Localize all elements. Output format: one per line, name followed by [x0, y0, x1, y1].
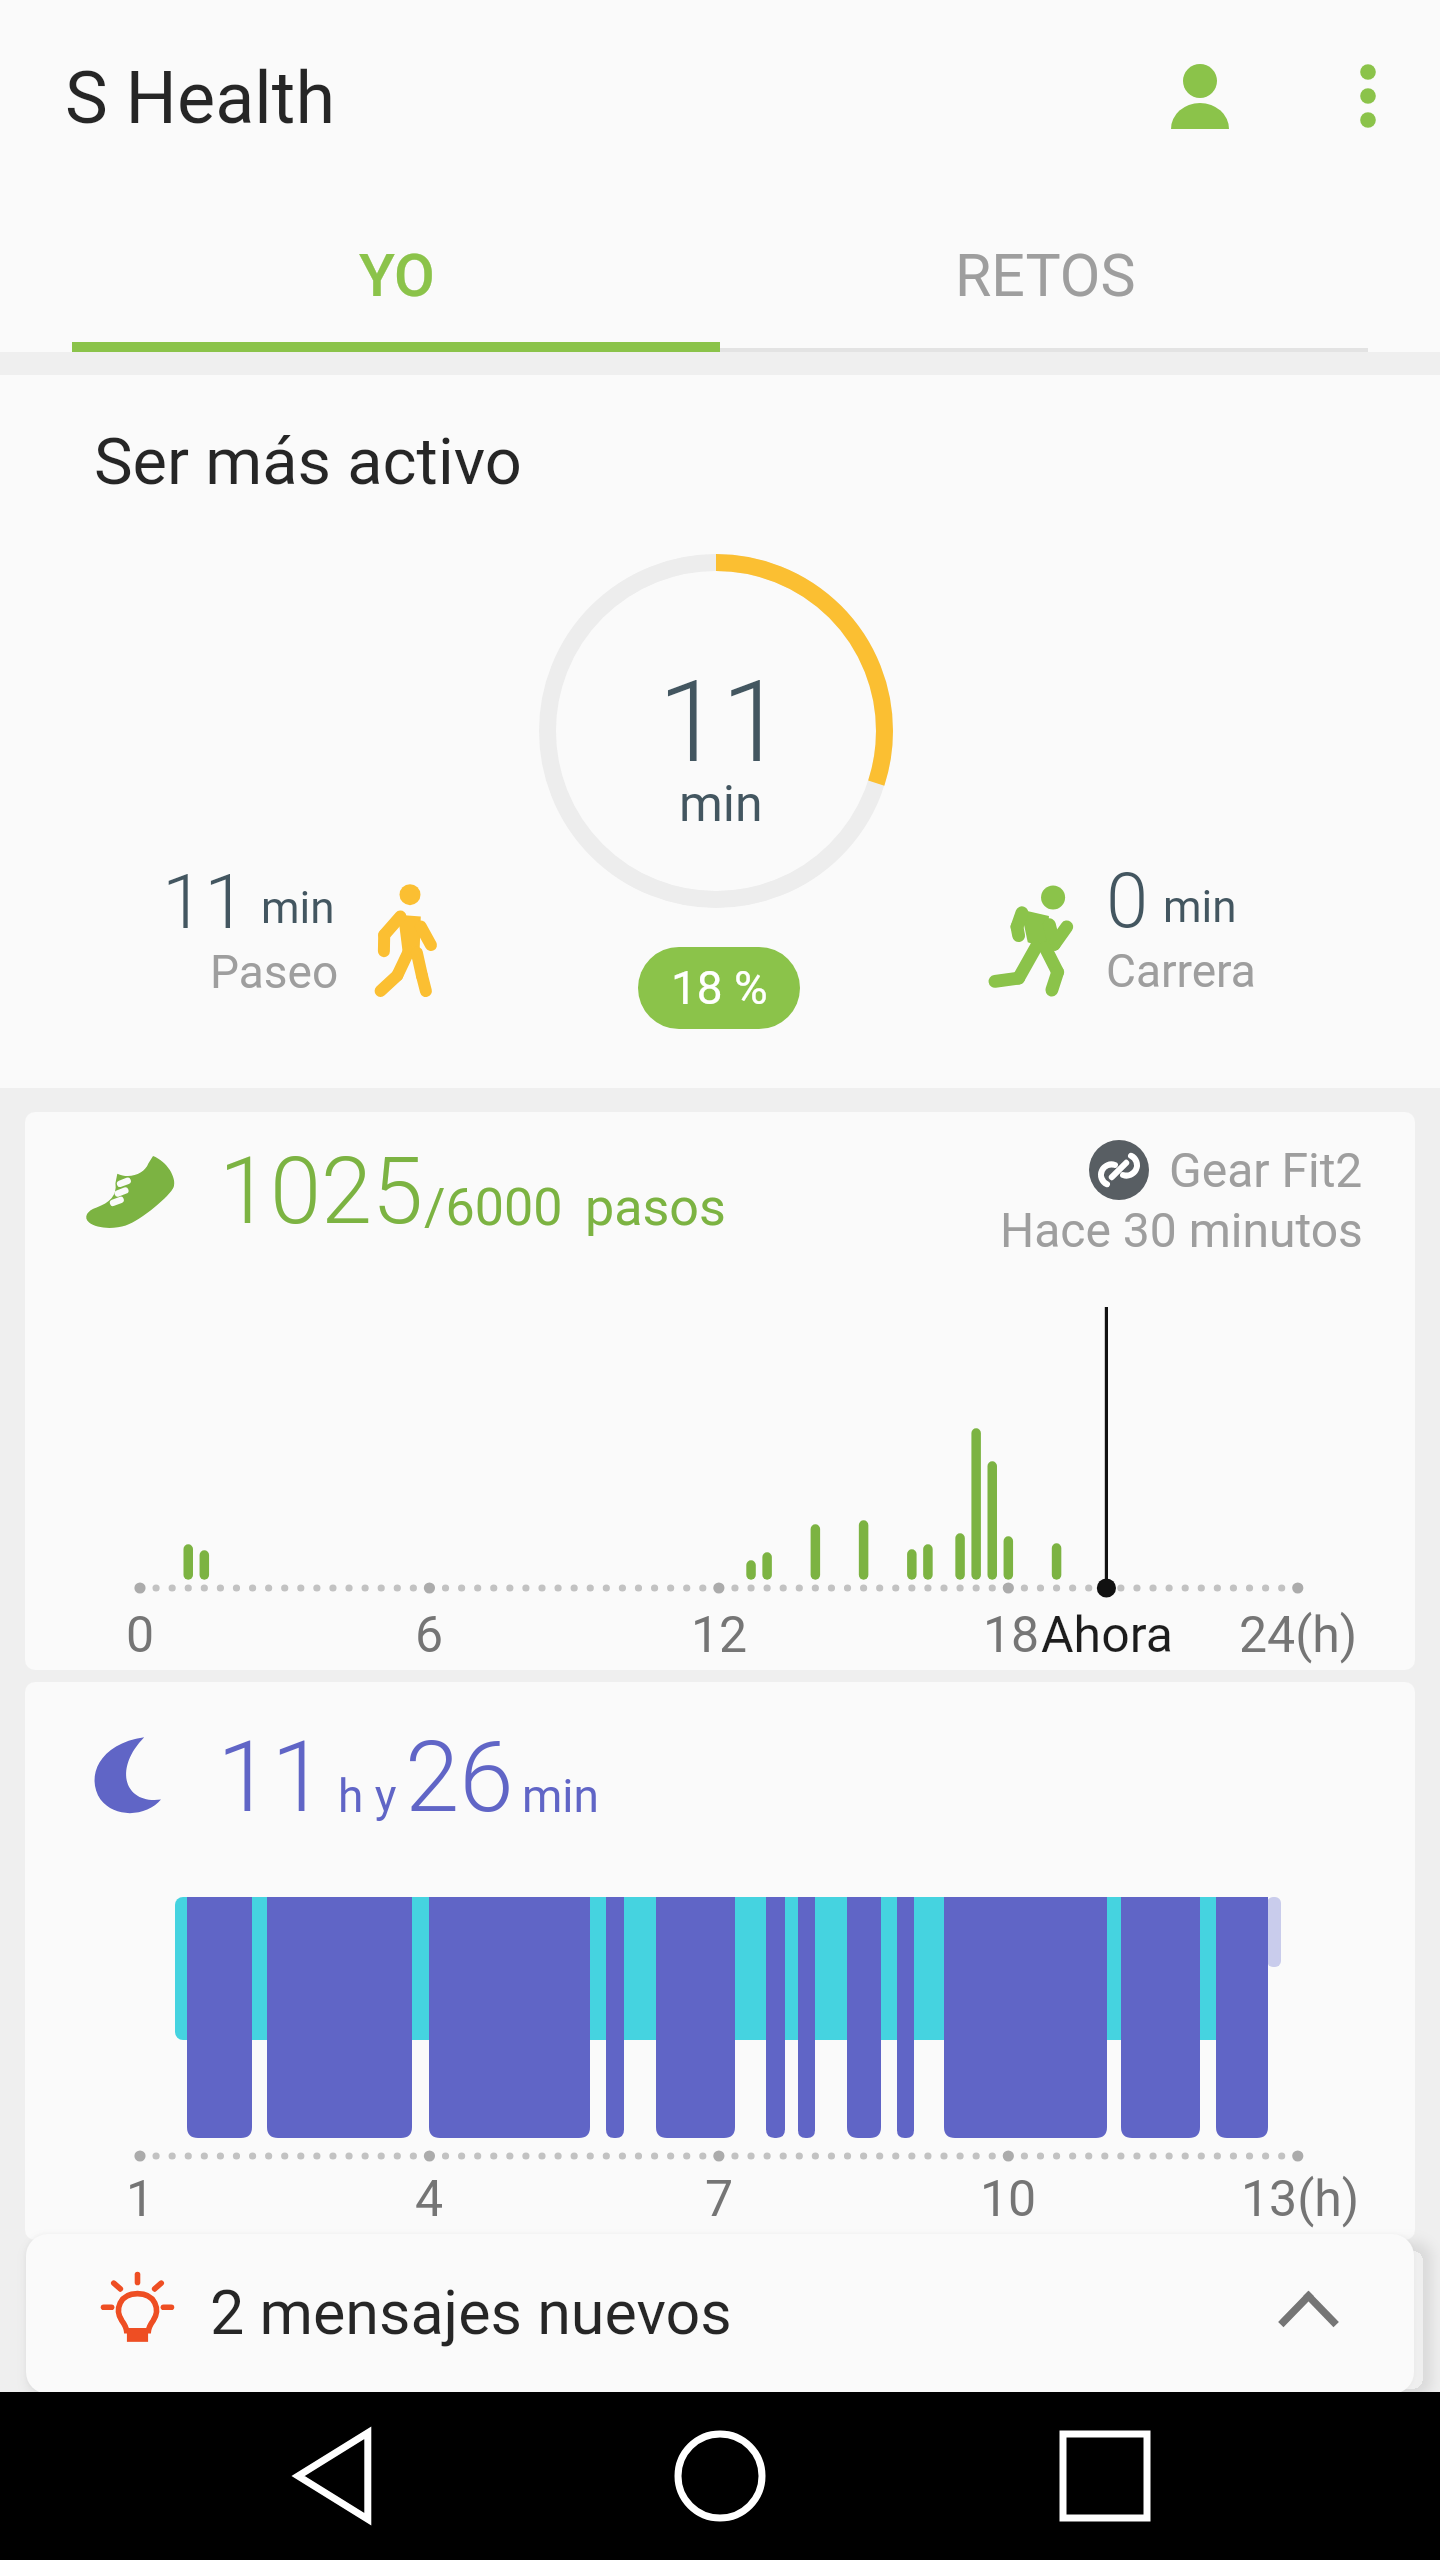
staticText: YO: [359, 241, 435, 310]
staticText: 18: [983, 1606, 1040, 1665]
staticText: /6000: [424, 1177, 563, 1238]
staticText: 0: [126, 1606, 155, 1665]
button[interactable]: Ser más activo: [0, 375, 1440, 1088]
staticText: min: [679, 775, 763, 834]
staticText: Ser más activo: [94, 424, 522, 500]
staticText: 11: [217, 1720, 326, 1835]
staticText: 1: [126, 2170, 155, 2229]
staticText: h y: [338, 1769, 397, 1823]
staticText: min: [1163, 881, 1237, 933]
staticText: Hace 30 minutos: [1000, 1202, 1363, 1258]
staticText: 6: [415, 1606, 444, 1665]
staticText: 11: [658, 655, 785, 789]
staticText: 12: [691, 1606, 748, 1665]
staticText: Gear Fit2: [1169, 1142, 1363, 1198]
staticText: 18 %: [671, 961, 768, 1015]
staticText: 10: [980, 2170, 1037, 2229]
staticText: 26: [405, 1720, 514, 1835]
button[interactable]: RETOS: [721, 210, 1370, 340]
staticText: 24(h): [1239, 1606, 1358, 1665]
staticText: 1025: [219, 1138, 424, 1246]
staticText: RETOS: [955, 241, 1136, 310]
staticText: Ahora: [1041, 1606, 1173, 1665]
button[interactable]: YO: [72, 210, 721, 340]
staticText: Paseo: [210, 945, 339, 999]
button[interactable]: 11: [25, 1682, 1415, 2240]
button[interactable]: Profile: [1150, 46, 1250, 146]
button[interactable]: 2 mensajes nuevos: [26, 2234, 1414, 2394]
button[interactable]: Back: [285, 2426, 385, 2526]
staticText: 4: [415, 2170, 444, 2229]
staticText: 11: [162, 857, 247, 946]
button[interactable]: 18 %: [638, 947, 800, 1029]
staticText: 7: [705, 2170, 734, 2229]
button[interactable]: 1025: [25, 1112, 1415, 1670]
staticText: min: [261, 882, 335, 934]
staticText: min: [522, 1769, 599, 1823]
button[interactable]: Home: [670, 2426, 770, 2526]
staticText: pasos: [585, 1177, 726, 1238]
staticText: 2 mensajes nuevos: [210, 2277, 732, 2348]
staticText: S Health: [65, 56, 336, 140]
button[interactable]: More options: [1318, 46, 1418, 146]
staticText: Carrera: [1106, 944, 1256, 998]
staticText: 13(h): [1241, 2170, 1360, 2229]
staticText: 0: [1106, 856, 1149, 945]
button[interactable]: Recents: [1055, 2426, 1155, 2526]
